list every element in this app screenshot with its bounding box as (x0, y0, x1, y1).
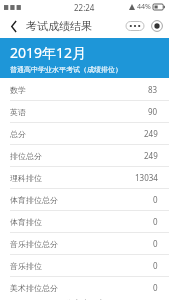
button[interactable]: 体育排位总分 (0, 189, 169, 210)
staticText: 体育排位 (10, 217, 42, 227)
button[interactable]: 总分 (0, 123, 169, 144)
staticText: 分享小程序 (65, 298, 105, 300)
staticText: 44% (137, 2, 151, 12)
staticText: 90 (148, 106, 158, 117)
button[interactable]: 体育排位 (0, 211, 169, 232)
staticText: 2019年12月 (10, 43, 87, 62)
staticText: 考试成绩结果 (26, 19, 92, 33)
staticText: 22:24 (74, 2, 95, 13)
staticText: 0 (153, 216, 158, 227)
staticText: 249 (144, 128, 158, 139)
button[interactable]: 排位总分 (0, 145, 169, 166)
staticText: 83 (148, 84, 158, 95)
button[interactable]: 英语 (0, 101, 169, 122)
staticText: 0 (153, 282, 158, 293)
button[interactable]: Back (6, 16, 22, 36)
button[interactable]: 分享小程序 (0, 298, 169, 300)
staticText: 0 (153, 238, 158, 249)
staticText: 音乐排位总分 (10, 239, 58, 249)
staticText: 普通高中学业水平考试（成绩排位） (10, 65, 122, 74)
button[interactable]: 美术排位总分 (0, 277, 169, 298)
staticText: 13034 (135, 172, 158, 183)
staticText: 总分 (10, 129, 26, 139)
staticText: 0 (153, 194, 158, 205)
button[interactable]: Close mini program (151, 20, 163, 32)
button[interactable]: 音乐排位 (0, 255, 169, 276)
button[interactable]: More options (125, 20, 145, 32)
staticText: 美术排位总分 (10, 283, 58, 293)
button[interactable]: 理科排位 (0, 167, 169, 188)
staticText: 英语 (10, 107, 26, 117)
button[interactable]: 数学 (0, 79, 169, 100)
staticText: 音乐排位 (10, 261, 42, 271)
staticText: 排位总分 (10, 151, 42, 161)
staticText: 体育排位总分 (10, 195, 58, 205)
staticText: 249 (144, 150, 158, 161)
button[interactable]: 音乐排位总分 (0, 233, 169, 254)
staticText: 理科排位 (10, 173, 42, 183)
staticText: 数学 (10, 85, 26, 95)
staticText: 0 (153, 260, 158, 271)
